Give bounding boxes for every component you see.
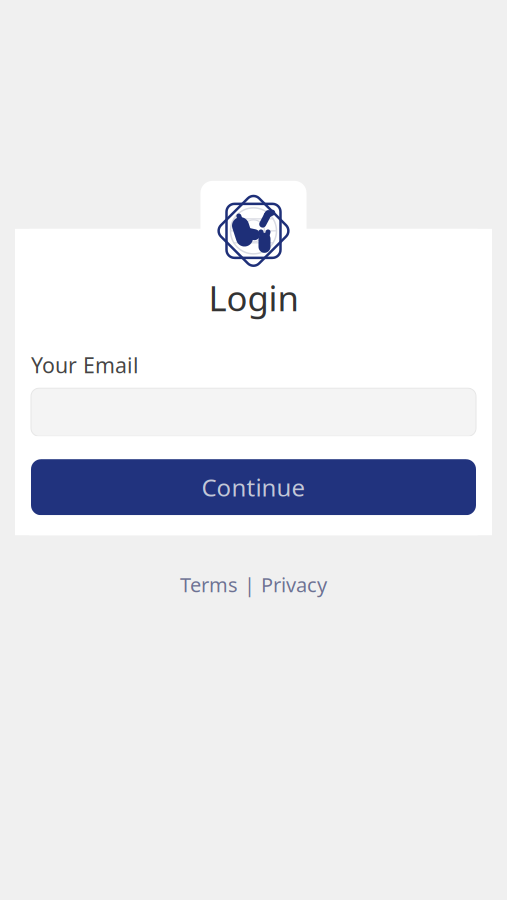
staticText: Login bbox=[208, 275, 298, 321]
staticText: Terms bbox=[180, 571, 238, 598]
staticText: | bbox=[244, 571, 255, 598]
button[interactable]: Continue bbox=[31, 459, 476, 515]
staticText: Privacy bbox=[261, 571, 327, 598]
staticText: Your Email bbox=[31, 351, 139, 379]
button[interactable]: Privacy bbox=[255, 565, 333, 604]
staticText: Continue bbox=[201, 471, 305, 503]
button[interactable]: Terms bbox=[174, 565, 244, 604]
